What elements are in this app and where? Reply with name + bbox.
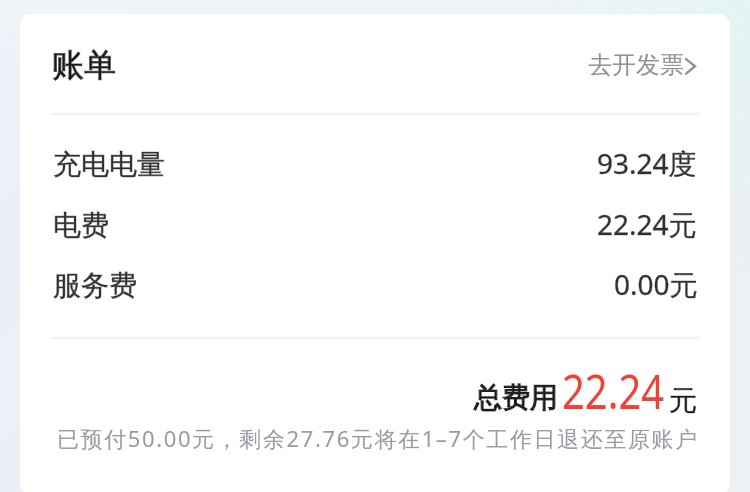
staticText: 22.24元 [597, 205, 697, 243]
staticText: 已预付50.00元，剩余27.76元将在1–7个工作日退还至原账户 [57, 423, 699, 453]
staticText: 总费用 [474, 380, 558, 415]
staticText: 22.24 [562, 358, 664, 423]
staticText: 93.24度 [597, 144, 697, 182]
staticText: 电费 [53, 208, 109, 243]
staticText: 充电电量 [53, 147, 165, 182]
staticText: 账单 [52, 45, 116, 85]
other: 去开发票 [684, 56, 698, 76]
staticText: 服务费 [53, 268, 137, 303]
staticText: 元 [669, 383, 697, 418]
button[interactable]: 去开发票 [566, 41, 702, 87]
staticText: 去开发票 [588, 50, 684, 80]
staticText: 0.00元 [614, 265, 698, 303]
